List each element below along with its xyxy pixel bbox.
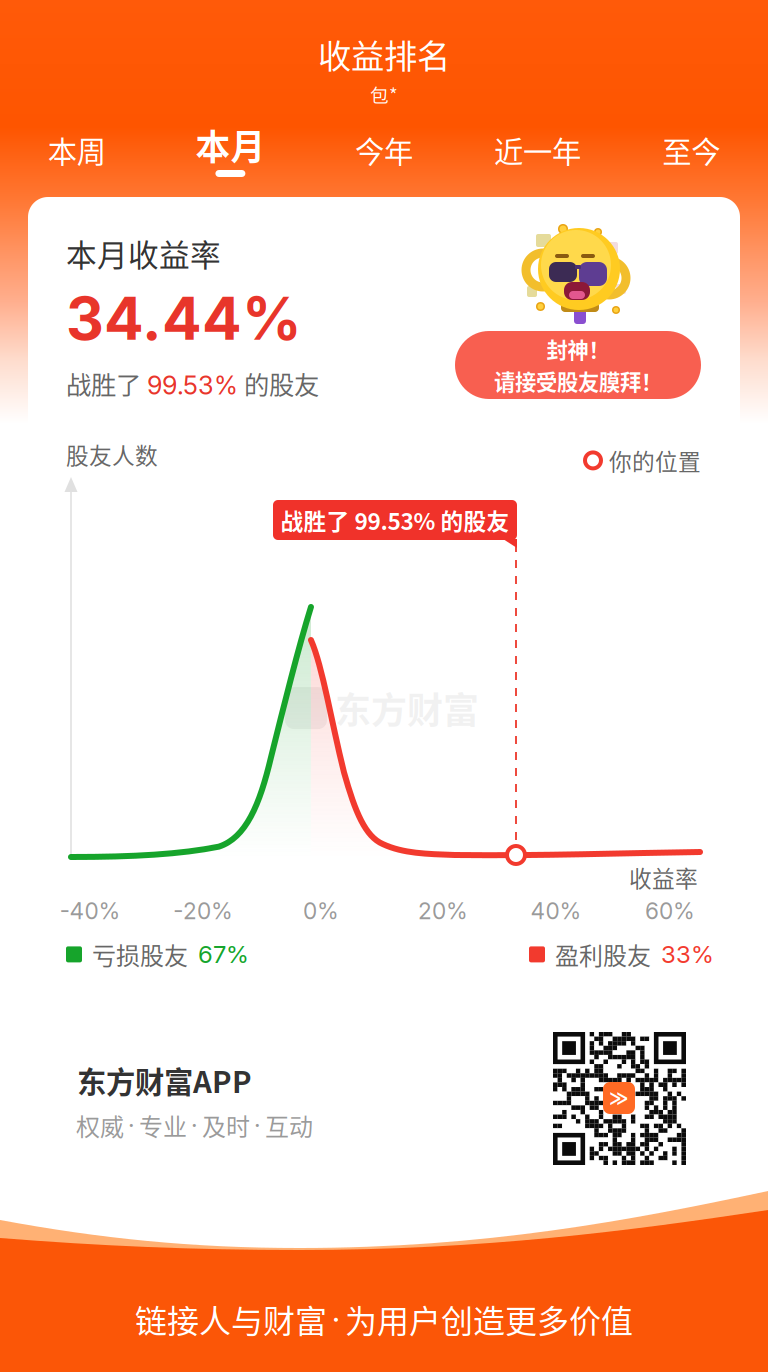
staticText: 请接受股友膜拜！ [494,365,662,396]
staticText: 盈利股友 [555,937,651,972]
staticText: 0% [303,897,339,925]
staticText: 封神！ [546,334,609,364]
staticText: -40% [59,897,120,925]
staticText: 互动 [265,1108,313,1143]
button[interactable]: 今年 [307,122,461,186]
button[interactable]: 本周 [0,122,154,186]
staticText: 本周 [48,129,106,171]
staticText: 及时 [202,1108,250,1143]
staticText: 40% [530,897,581,925]
staticText: 战胜了 [66,365,147,402]
staticText: 你的位置 [609,444,701,477]
button[interactable]: 本月 [154,122,307,186]
staticText: 60% [645,897,695,925]
staticText: 战胜了 99.53% 的股友 [280,504,509,536]
button[interactable]: 近一年 [461,122,614,186]
staticText: 20% [418,897,468,925]
staticText: · [254,1111,261,1140]
staticText: 至今 [662,129,720,171]
staticText: 为用户创造更多价值 [345,1296,633,1342]
staticText: 链接人与财富 [135,1296,327,1342]
staticText: -20% [173,897,233,925]
staticText: 专业 [139,1108,187,1143]
staticText: 股友人数 [66,438,158,471]
staticText: 33% [661,940,714,969]
staticText: 本月收益率 [66,231,221,275]
staticText: · [332,1300,340,1338]
staticText: 亏损股友 [92,937,188,972]
staticText: 67% [198,940,249,969]
staticText: · [191,1111,198,1140]
staticText: 的股友 [238,365,319,402]
staticText: ≫ [609,1087,629,1109]
staticText: 34.44% [66,283,302,354]
staticText: · [128,1111,135,1140]
staticText: 东方财富 [335,682,479,734]
staticText: 本月 [195,120,265,170]
staticText: 收益排名 [318,30,450,78]
staticText: 今年 [355,129,413,171]
staticText: 近一年 [494,129,581,171]
staticText: 权威 [76,1108,124,1143]
staticText: 收益率 [629,861,698,894]
staticText: 东方财富APP [77,1059,252,1101]
button[interactable]: 至今 [614,122,768,186]
staticText: 99.53% [147,370,238,400]
staticText: 包* [370,80,398,107]
